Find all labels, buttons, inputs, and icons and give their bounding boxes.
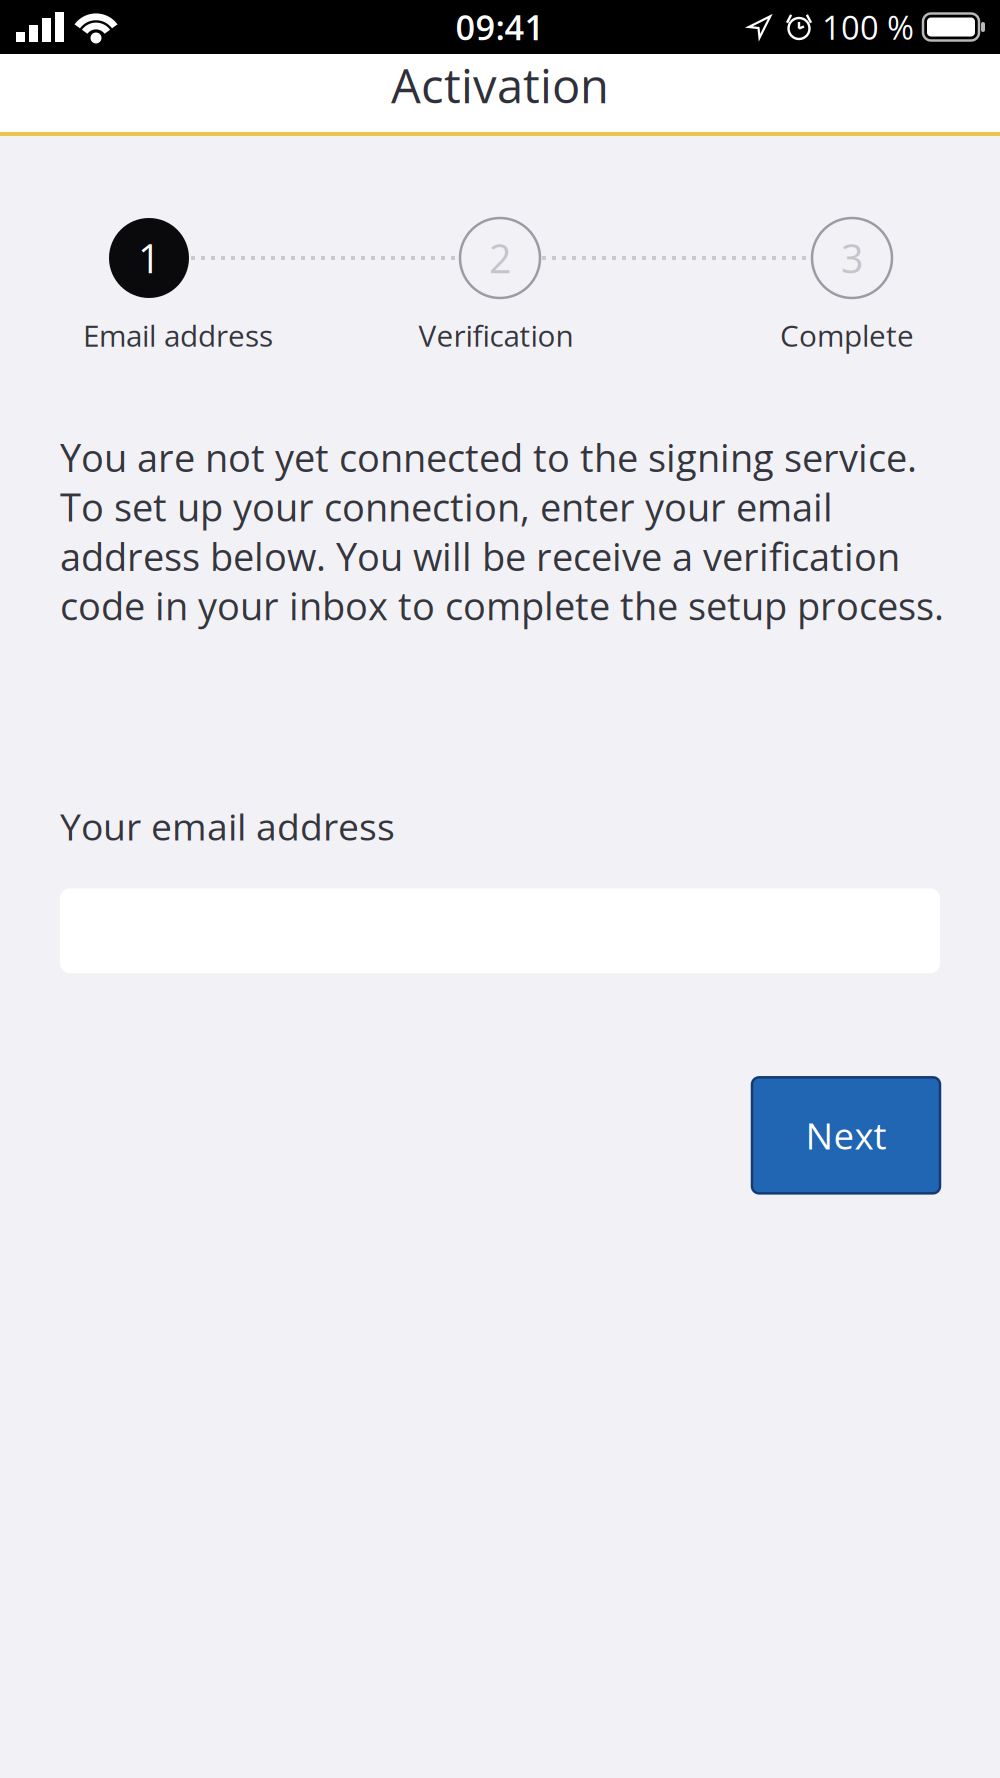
staticText: Your email address	[60, 800, 395, 851]
staticText: 100 %	[822, 5, 914, 49]
staticText: 2	[489, 231, 511, 285]
staticText: Complete	[780, 315, 914, 355]
staticText: 3	[841, 231, 863, 285]
staticText: 1	[138, 231, 160, 285]
staticText: 09:41	[455, 4, 544, 50]
staticText: Activation	[391, 53, 609, 117]
button[interactable]: Next	[752, 1077, 940, 1193]
staticText: Next	[805, 1110, 886, 1160]
button[interactable]: Your email address	[0, 888, 1000, 973]
staticText: Email address	[83, 315, 273, 355]
staticText: You are not yet connected to the signing…	[60, 431, 944, 631]
staticText: Verification	[418, 315, 573, 355]
